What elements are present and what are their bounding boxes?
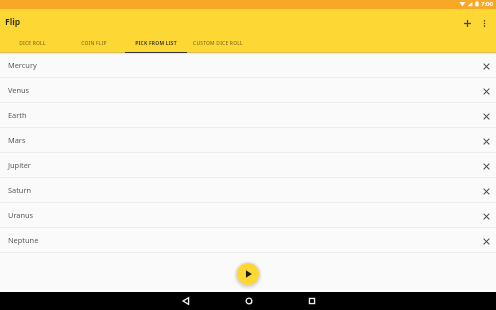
button[interactable]: Add: [459, 15, 476, 32]
button[interactable]: Mercury: [0, 53, 496, 78]
button[interactable]: Remove Mars: [479, 134, 493, 148]
staticText: Venus: [8, 85, 30, 95]
staticText: Mars: [8, 135, 26, 145]
button[interactable]: DICE ROLL: [1, 35, 63, 53]
staticText: Neptune: [8, 235, 39, 245]
button[interactable]: More options: [476, 15, 493, 32]
button[interactable]: Remove Mercury: [479, 59, 493, 73]
button[interactable]: Jupiter: [0, 153, 496, 178]
staticText: 7:00: [481, 0, 493, 8]
button[interactable]: Remove Saturn: [479, 184, 493, 198]
staticText: Earth: [8, 110, 27, 120]
button[interactable]: Neptune: [0, 228, 496, 253]
button[interactable]: Remove Uranus: [479, 209, 493, 223]
button[interactable]: Remove Earth: [479, 109, 493, 123]
staticText: COIN FLIP: [81, 40, 107, 47]
staticText: CUSTOM DICE ROLL: [193, 40, 243, 47]
button[interactable]: Remove Jupiter: [479, 159, 493, 173]
button[interactable]: CUSTOM DICE ROLL: [187, 35, 249, 53]
button[interactable]: PICK FROM LIST: [125, 35, 187, 53]
button[interactable]: Back: [177, 292, 195, 310]
staticText: Mercury: [8, 60, 37, 70]
button[interactable]: Home: [240, 292, 258, 310]
staticText: Saturn: [8, 185, 32, 195]
button[interactable]: Uranus: [0, 203, 496, 228]
button[interactable]: COIN FLIP: [63, 35, 125, 53]
staticText: Jupiter: [8, 160, 31, 170]
staticText: Flip: [5, 16, 21, 28]
staticText: PICK FROM LIST: [135, 40, 177, 47]
button[interactable]: Mars: [0, 128, 496, 153]
button[interactable]: Play: [237, 263, 259, 285]
button[interactable]: Recents: [303, 292, 321, 310]
button[interactable]: Venus: [0, 78, 496, 103]
button[interactable]: Earth: [0, 103, 496, 128]
staticText: Uranus: [8, 210, 34, 220]
button[interactable]: Remove Venus: [479, 84, 493, 98]
button[interactable]: Remove Neptune: [479, 234, 493, 248]
button[interactable]: Saturn: [0, 178, 496, 203]
staticText: DICE ROLL: [19, 40, 46, 47]
